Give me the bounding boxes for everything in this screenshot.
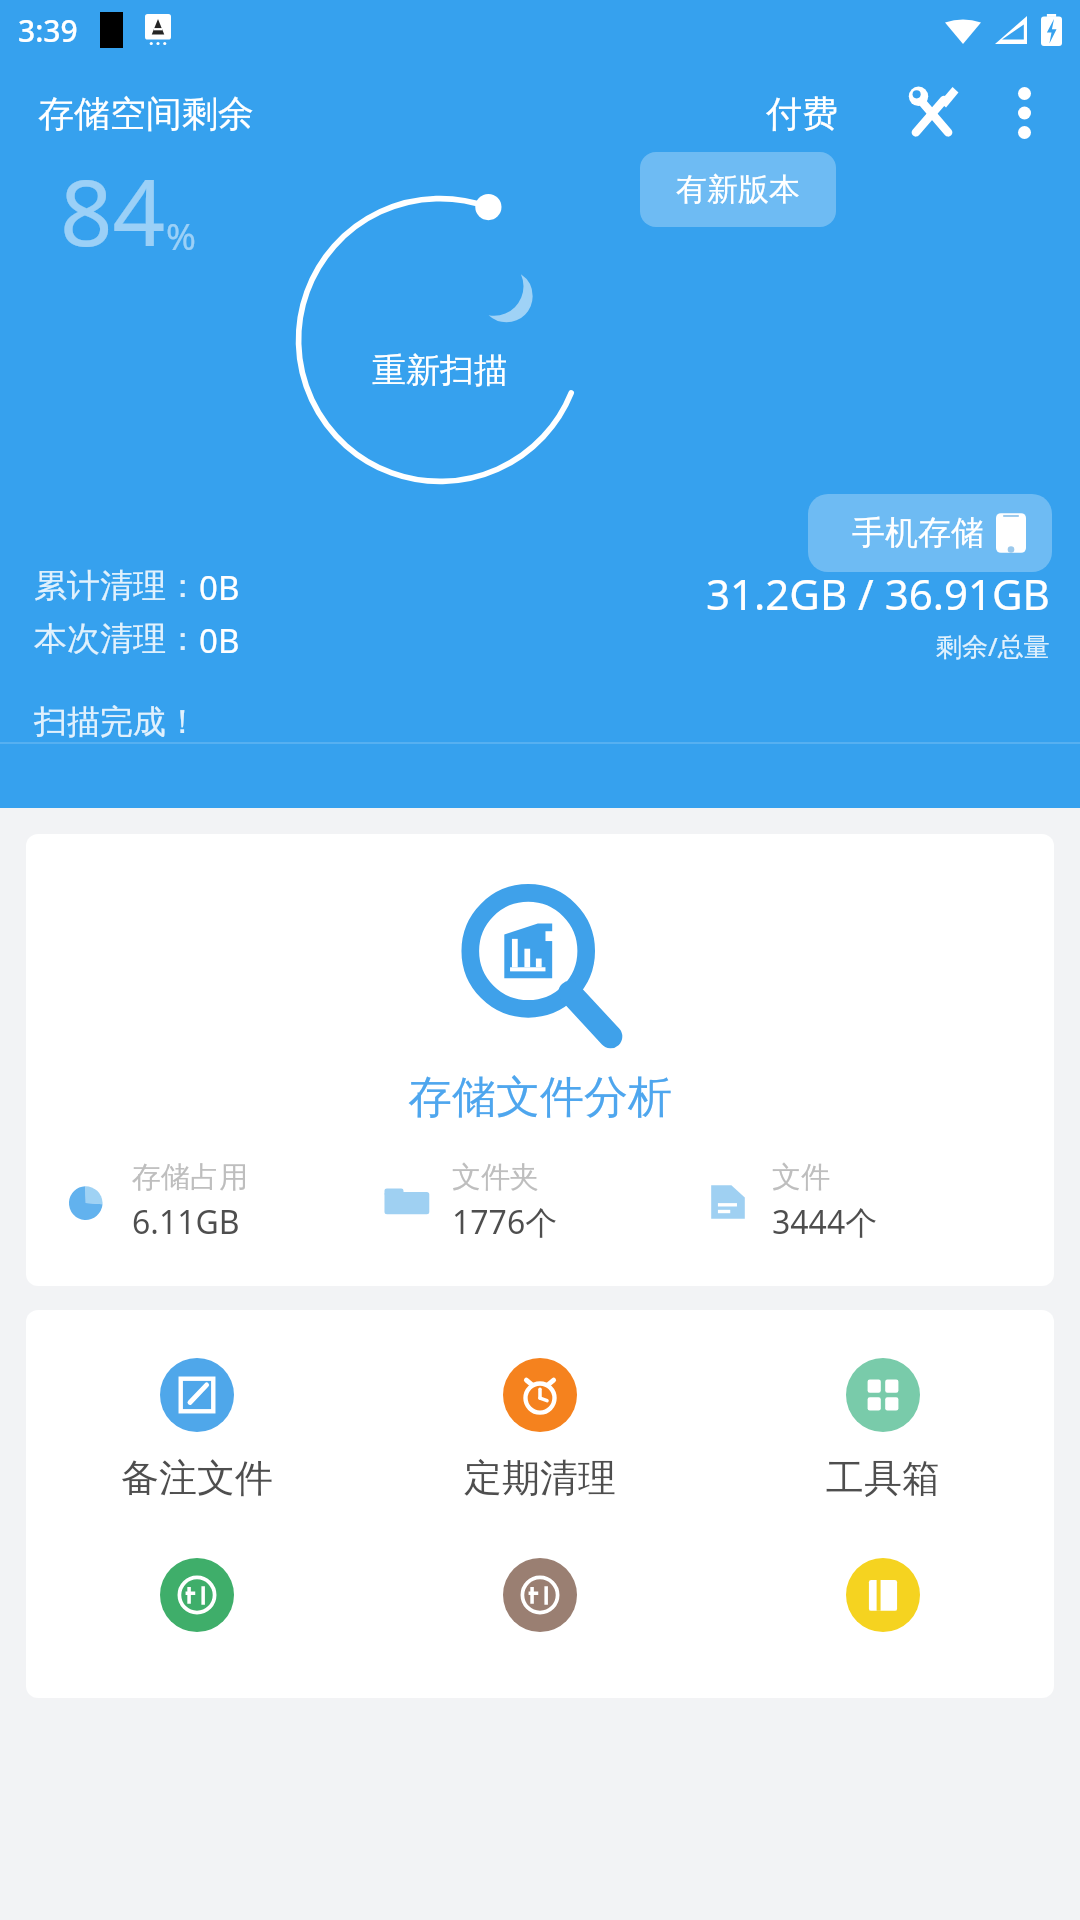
staticText: 文件夹 bbox=[452, 1159, 539, 1196]
button[interactable]: Tools bbox=[890, 72, 974, 154]
staticText: 1776个 bbox=[452, 1200, 558, 1244]
staticText: 有新版本 bbox=[676, 170, 800, 209]
button[interactable]: 存储文件分析 bbox=[26, 834, 1054, 1286]
button[interactable]: 重新扫描 bbox=[286, 186, 594, 494]
staticText: 3444个 bbox=[772, 1200, 878, 1244]
staticText: % bbox=[166, 212, 196, 261]
button[interactable]: 存储占用 bbox=[60, 1159, 380, 1244]
button[interactable]: 文件 bbox=[700, 1159, 1020, 1244]
staticText: 工具箱 bbox=[826, 1454, 940, 1502]
staticText: 存储空间剩余 bbox=[38, 91, 254, 136]
button[interactable]: 付费 bbox=[756, 85, 848, 142]
staticText: 31.2GB / 36.91GB bbox=[706, 565, 1050, 622]
button[interactable] bbox=[368, 1552, 711, 1638]
button[interactable]: 手机存储 bbox=[808, 494, 1052, 572]
button[interactable]: 文件夹 bbox=[380, 1159, 700, 1244]
staticText: 存储占用 bbox=[132, 1159, 248, 1196]
staticText: 文件 bbox=[772, 1159, 830, 1196]
staticText: 备注文件 bbox=[121, 1454, 273, 1502]
button[interactable]: 有新版本 bbox=[640, 152, 836, 227]
button[interactable]: 备注文件 bbox=[26, 1352, 368, 1508]
staticText: 扫描完成！ bbox=[34, 701, 199, 743]
button[interactable] bbox=[711, 1552, 1054, 1638]
staticText: 付费 bbox=[766, 91, 838, 136]
staticText: 0B bbox=[199, 618, 240, 663]
button[interactable]: 定期清理 bbox=[368, 1352, 711, 1508]
staticText: 剩余/总量 bbox=[936, 628, 1050, 664]
staticText: 累计清理： bbox=[34, 565, 199, 607]
staticText: 存储文件分析 bbox=[408, 1070, 672, 1125]
staticText: 6.11GB bbox=[132, 1200, 240, 1244]
staticText: 3:39 bbox=[18, 10, 78, 51]
button[interactable] bbox=[26, 1552, 368, 1638]
staticText: 重新扫描 bbox=[372, 349, 508, 392]
button[interactable]: 工具箱 bbox=[711, 1352, 1054, 1508]
staticText: 手机存储 bbox=[852, 512, 984, 554]
staticText: 定期清理 bbox=[464, 1454, 616, 1502]
staticText: 84 bbox=[60, 148, 166, 273]
staticText: 本次清理： bbox=[34, 618, 199, 660]
staticText: 0B bbox=[199, 565, 240, 610]
button[interactable]: More options bbox=[982, 72, 1066, 154]
